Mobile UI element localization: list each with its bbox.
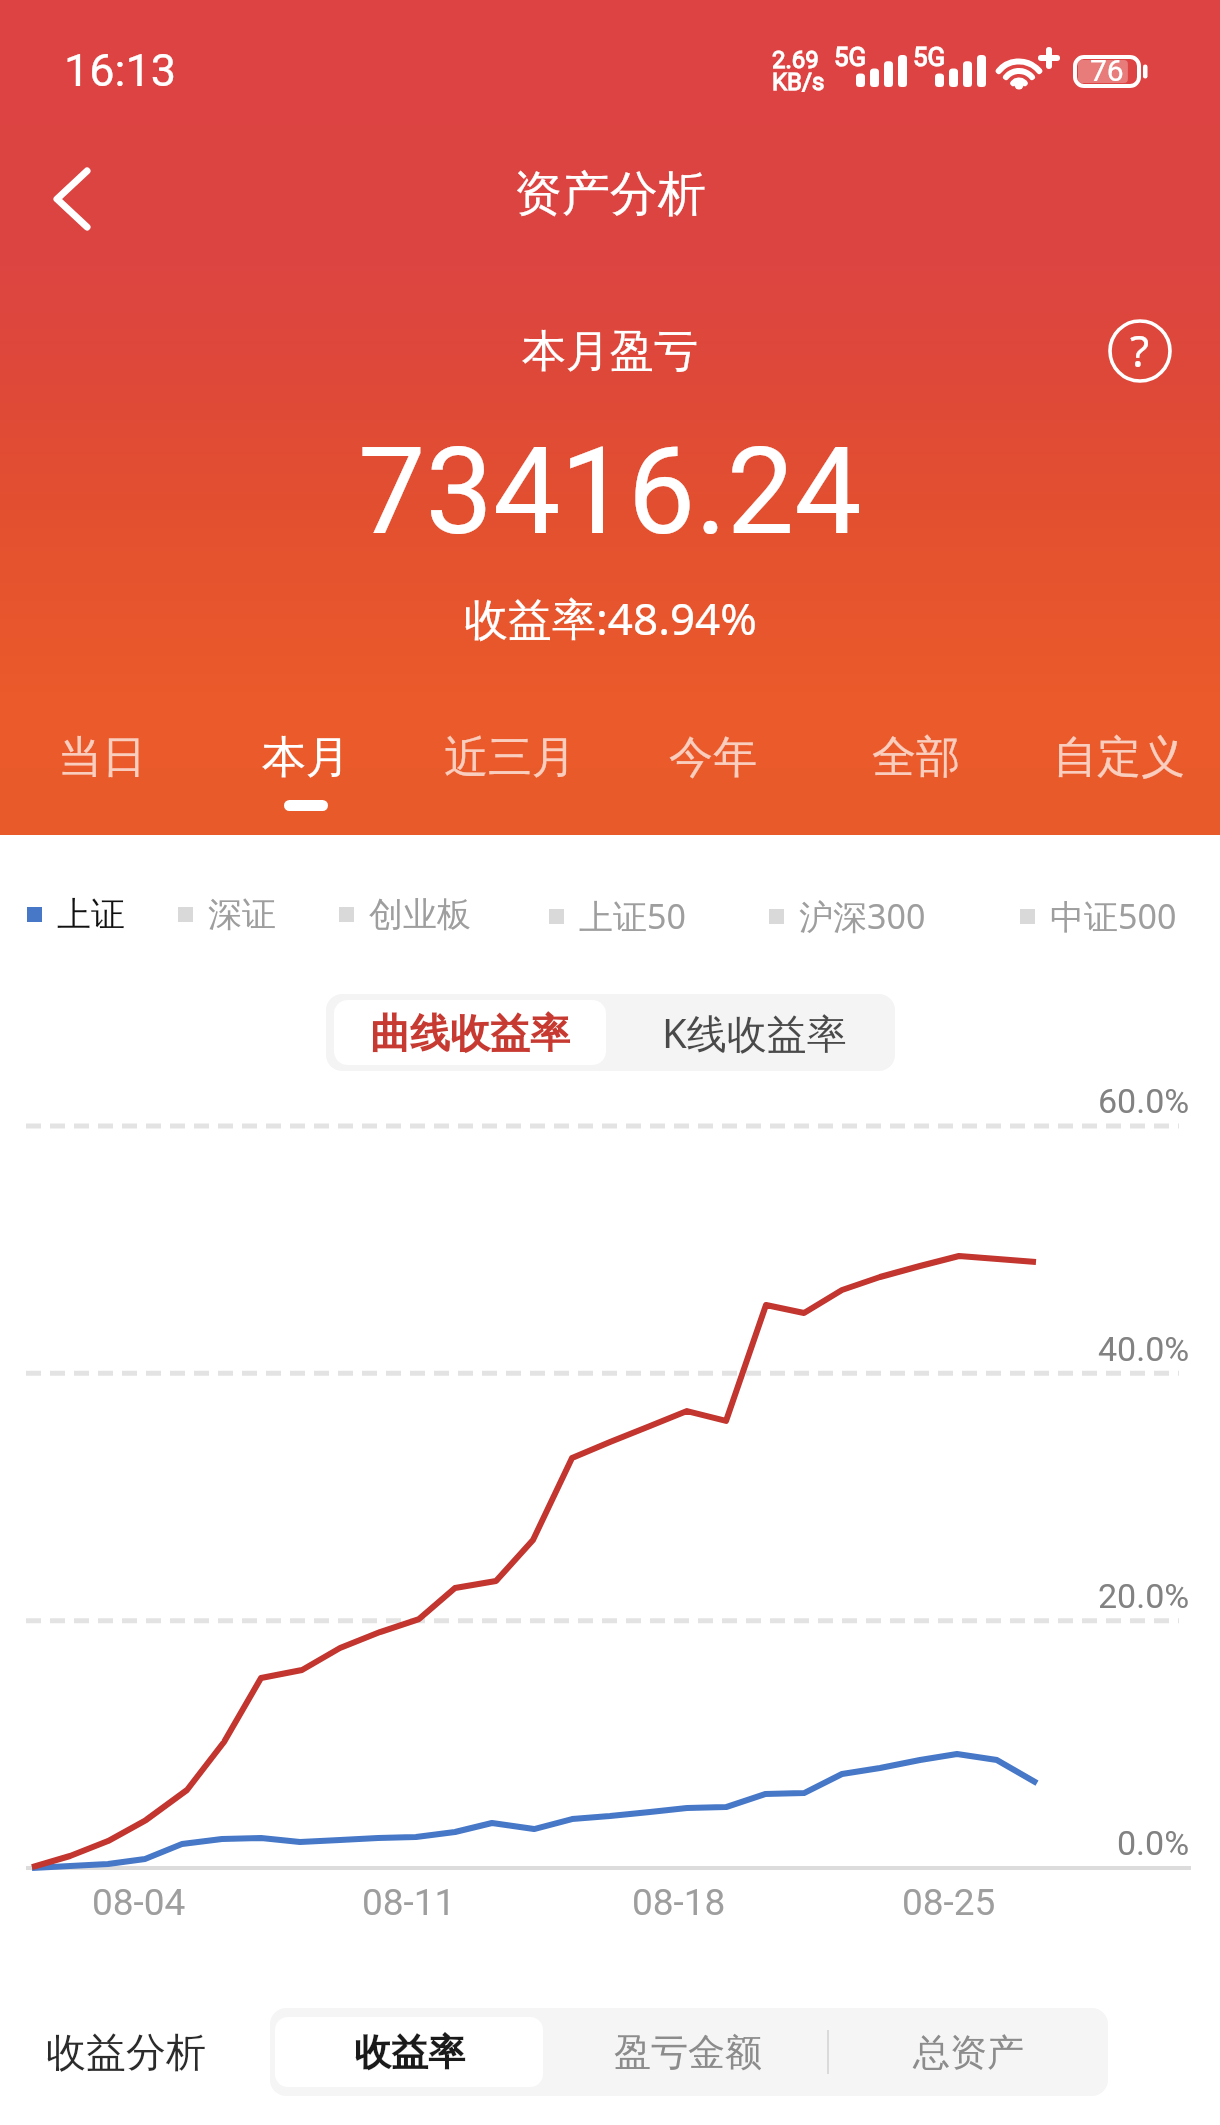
staticText: 08-18: [632, 1881, 726, 1924]
staticText: 2.69: [772, 46, 819, 74]
staticText: 本月盈亏: [522, 324, 698, 379]
staticText: 本月: [262, 730, 350, 785]
staticText: 深证: [208, 893, 276, 936]
staticText: 收益率: [354, 2029, 465, 2076]
button[interactable]: 近三月: [408, 710, 611, 835]
staticText: 08-25: [902, 1881, 996, 1924]
staticText: 5G: [913, 42, 946, 72]
staticText: 全部: [872, 730, 960, 785]
staticText: 曲线收益率: [370, 1008, 570, 1058]
button[interactable]: 总资产: [829, 2008, 1108, 2096]
staticText: 73416.24: [358, 422, 862, 563]
staticText: 创业板: [369, 893, 471, 936]
button[interactable]: 沪深300: [769, 875, 926, 957]
staticText: KB/s: [772, 68, 825, 96]
staticText: 5G: [834, 42, 867, 72]
button[interactable]: Back: [32, 159, 112, 239]
staticText: 上证: [57, 893, 125, 936]
staticText: 76: [1090, 53, 1124, 86]
staticText: 40.0%: [1098, 1329, 1190, 1369]
staticText: 0.0%: [1117, 1823, 1190, 1863]
staticText: 资产分析: [514, 164, 706, 224]
button[interactable]: 盈亏金额: [548, 2008, 827, 2096]
button[interactable]: 中证500: [1020, 875, 1177, 957]
button[interactable]: K线收益率: [614, 994, 895, 1071]
button[interactable]: 全部: [814, 710, 1017, 835]
button[interactable]: 深证: [178, 875, 276, 954]
staticText: 16:13: [64, 44, 177, 97]
staticText: 当日: [58, 730, 146, 785]
staticText: 自定义: [1053, 730, 1185, 785]
staticText: 总资产: [913, 2029, 1024, 2076]
staticText: 08-11: [362, 1881, 456, 1924]
staticText: 中证500: [1050, 893, 1177, 939]
staticText: 近三月: [444, 730, 576, 785]
button[interactable]: 上证: [27, 875, 125, 954]
staticText: 收益分析: [46, 2027, 206, 2077]
staticText: 20.0%: [1098, 1576, 1190, 1616]
staticText: K线收益率: [662, 1005, 847, 1060]
button[interactable]: 自定义: [1017, 710, 1220, 835]
button[interactable]: 本月: [204, 710, 408, 835]
button[interactable]: 当日: [0, 710, 204, 835]
button[interactable]: 今年: [611, 710, 814, 835]
staticText: 收益率:48.94%: [464, 588, 757, 648]
staticText: ?: [1130, 320, 1150, 380]
button[interactable]: 曲线收益率: [326, 994, 614, 1071]
button[interactable]: Help: [1105, 316, 1175, 386]
button[interactable]: 收益率: [270, 2008, 548, 2096]
staticText: 上证50: [579, 893, 686, 939]
button[interactable]: 创业板: [339, 875, 471, 954]
staticText: 盈亏金额: [614, 2029, 762, 2076]
staticText: 60.0%: [1098, 1081, 1190, 1121]
staticText: 沪深300: [799, 893, 926, 939]
staticText: 今年: [669, 730, 757, 785]
staticText: 08-04: [92, 1881, 186, 1924]
button[interactable]: 上证50: [549, 875, 686, 957]
